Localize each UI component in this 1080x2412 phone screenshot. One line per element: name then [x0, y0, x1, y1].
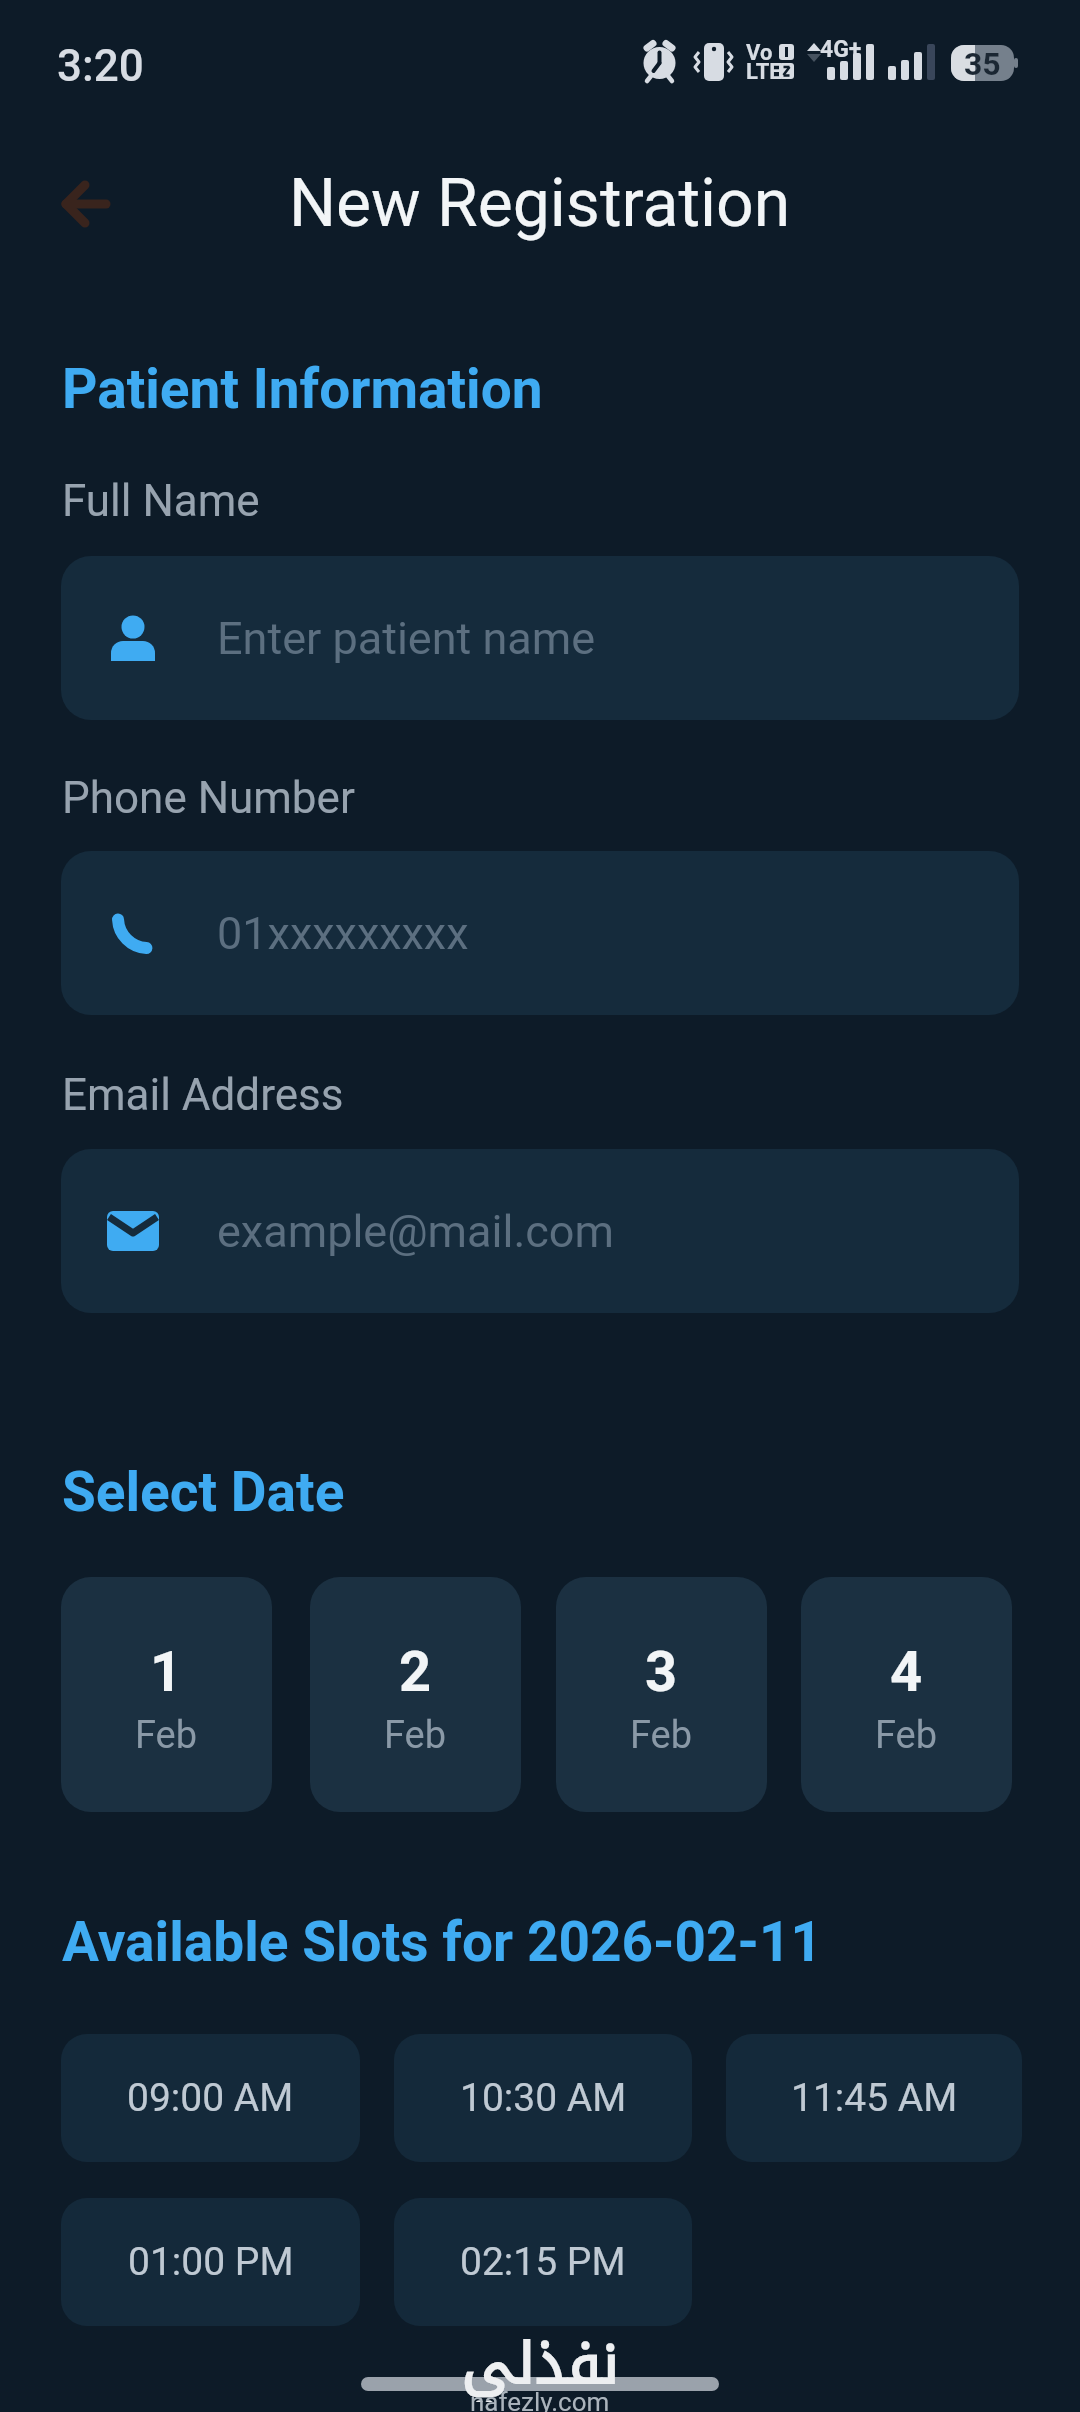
staticText: 4 — [890, 1639, 923, 1701]
staticText: 02:15 PM — [460, 2239, 626, 2285]
button[interactable]: 11:45 AM — [726, 2034, 1022, 2162]
staticText: nafezly.com — [470, 2387, 610, 2412]
staticText: Patient Information — [62, 357, 543, 417]
staticText: Feb — [875, 1713, 938, 1758]
button[interactable]: 09:00 AM — [61, 2034, 360, 2162]
staticText: 10:30 AM — [460, 2075, 627, 2121]
button[interactable]: example@mail.com — [61, 1149, 1019, 1313]
button[interactable]: 2 — [310, 1577, 521, 1812]
staticText: 35 — [964, 45, 1001, 81]
staticText: 09:00 AM — [127, 2075, 294, 2121]
button[interactable]: 1 — [61, 1577, 272, 1812]
button[interactable]: 02:15 PM — [394, 2198, 692, 2326]
staticText: 01xxxxxxxxx — [217, 907, 469, 960]
button[interactable]: Enter patient name — [61, 556, 1019, 720]
staticText: Full Name — [62, 475, 260, 525]
staticText: 2 — [399, 1639, 432, 1701]
staticText: Feb — [630, 1713, 693, 1758]
staticText: 3:20 — [57, 40, 144, 84]
button[interactable]: 4 — [801, 1577, 1012, 1812]
button[interactable] — [52, 172, 116, 236]
staticText: 01:00 PM — [128, 2239, 294, 2285]
staticText: Email Address — [62, 1069, 344, 1119]
button[interactable]: 01:00 PM — [61, 2198, 360, 2326]
button[interactable]: 3 — [556, 1577, 767, 1812]
staticText: example@mail.com — [217, 1205, 614, 1258]
staticText: Select Date — [62, 1460, 345, 1520]
staticText: 3 — [645, 1639, 678, 1701]
staticText: 4G+ — [820, 36, 862, 60]
staticText: LTE — [746, 59, 782, 81]
staticText: Vo — [746, 40, 773, 62]
button[interactable]: 01xxxxxxxxx — [61, 851, 1019, 1015]
staticText: Enter patient name — [217, 612, 596, 665]
staticText: Phone Number — [62, 772, 355, 822]
staticText: Feb — [384, 1713, 447, 1758]
staticText: Available Slots for 2026-02-11 — [62, 1910, 823, 1970]
staticText: 11:45 AM — [791, 2075, 958, 2121]
staticText: Feb — [135, 1713, 198, 1758]
button[interactable]: 10:30 AM — [394, 2034, 692, 2162]
staticText: New Registration — [289, 165, 791, 241]
staticText: 1 — [150, 1639, 183, 1701]
staticText: نفذلي — [462, 2310, 619, 2402]
